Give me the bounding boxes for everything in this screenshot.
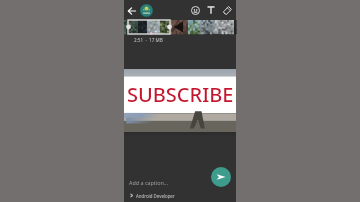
staticText: SUBSCRIBE — [127, 81, 234, 108]
staticText: Add a caption… — [129, 179, 169, 186]
staticText: 2:51 · 17 MB — [134, 37, 163, 43]
button[interactable]: Add text — [203, 2, 219, 18]
button[interactable]: Send — [211, 167, 231, 187]
button[interactable]: Back — [125, 4, 138, 17]
button[interactable]: Video trimmer — [124, 20, 236, 34]
button[interactable]: Add sticker — [187, 2, 203, 18]
staticText: Android Developer — [136, 193, 175, 199]
button[interactable]: Android Developer — [129, 189, 236, 202]
button[interactable]: Profile photo — [140, 4, 153, 17]
button[interactable]: Draw — [219, 2, 235, 18]
